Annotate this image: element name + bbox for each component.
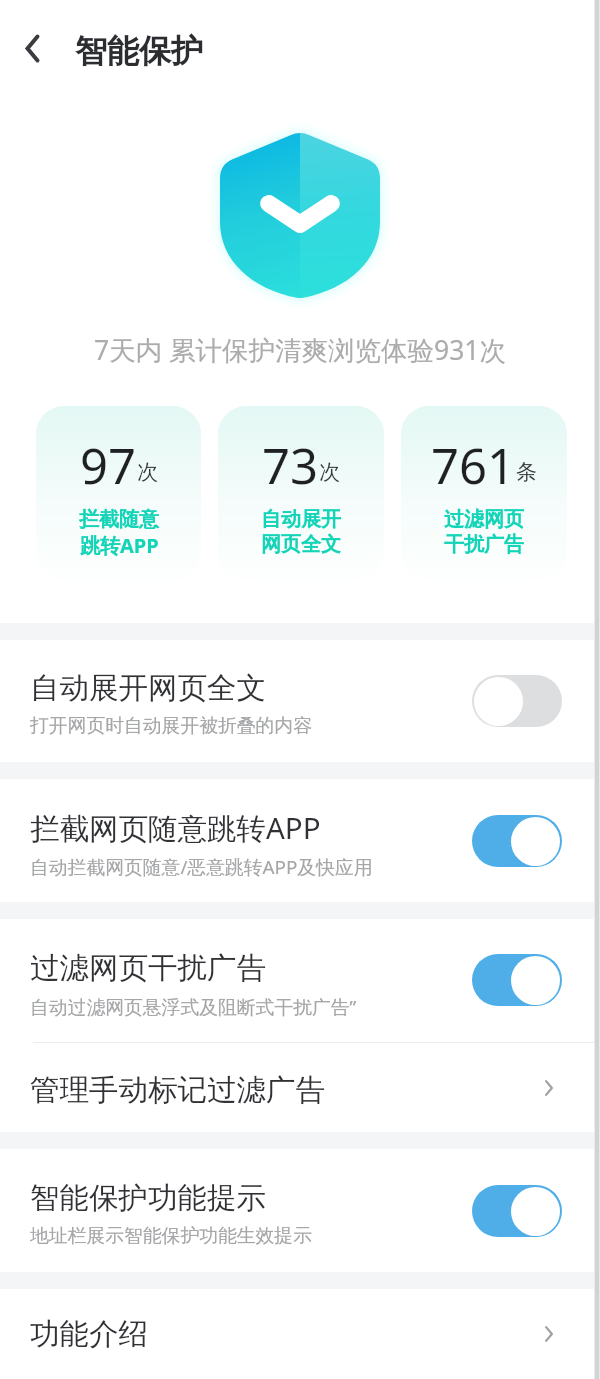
staticText: 管理手动标记过滤广告 <box>30 1072 545 1109</box>
staticText: 97 <box>80 432 137 499</box>
staticText: 网页全文 <box>261 532 341 557</box>
staticText: 7天内 累计保护清爽浏览体验931次 <box>0 332 600 368</box>
button[interactable]: 智能保护功能提示 <box>0 1149 600 1272</box>
staticText: 73 <box>262 432 319 499</box>
staticText: 次 <box>137 459 158 485</box>
staticText: 761 <box>431 432 516 499</box>
staticText: 地址栏展示智能保护功能生效提示 <box>30 1224 312 1248</box>
button[interactable]: 97 <box>36 406 201 580</box>
staticText: 自动过滤网页悬浮式及阻断式干扰广告” <box>30 994 357 1020</box>
staticText: 次 <box>319 459 340 485</box>
staticText: 自动展开 <box>261 507 341 532</box>
button[interactable]: Back <box>10 26 54 70</box>
button[interactable]: 拦截网页随意跳转APP <box>0 779 600 902</box>
staticText: 自动拦截网页随意/恶意跳转APP及快应用 <box>30 854 373 880</box>
staticText: 拦截网页随意跳转APP <box>30 807 321 847</box>
staticText: 过滤网页干扰广告 <box>30 950 266 987</box>
staticText: 拦截随意 <box>79 507 159 532</box>
staticText: 打开网页时自动展开被折叠的内容 <box>30 714 312 738</box>
button[interactable]: 管理手动标记过滤广告 <box>0 1043 600 1132</box>
staticText: 过滤网页 <box>444 507 524 532</box>
staticText: 智能保护 <box>75 31 203 71</box>
button[interactable]: 761 <box>401 406 567 580</box>
staticText: 自动展开网页全文 <box>30 670 266 707</box>
staticText: 干扰广告 <box>444 532 524 557</box>
button[interactable]: 自动展开网页全文 <box>0 640 600 762</box>
staticText: 条 <box>516 459 537 485</box>
staticText: 跳转APP <box>80 532 159 559</box>
button[interactable]: 73 <box>218 406 384 580</box>
staticText: 功能介绍 <box>30 1316 545 1353</box>
button[interactable]: 功能介绍 <box>0 1289 600 1374</box>
button[interactable]: 过滤网页干扰广告 <box>0 919 600 1042</box>
staticText: 智能保护功能提示 <box>30 1180 266 1217</box>
